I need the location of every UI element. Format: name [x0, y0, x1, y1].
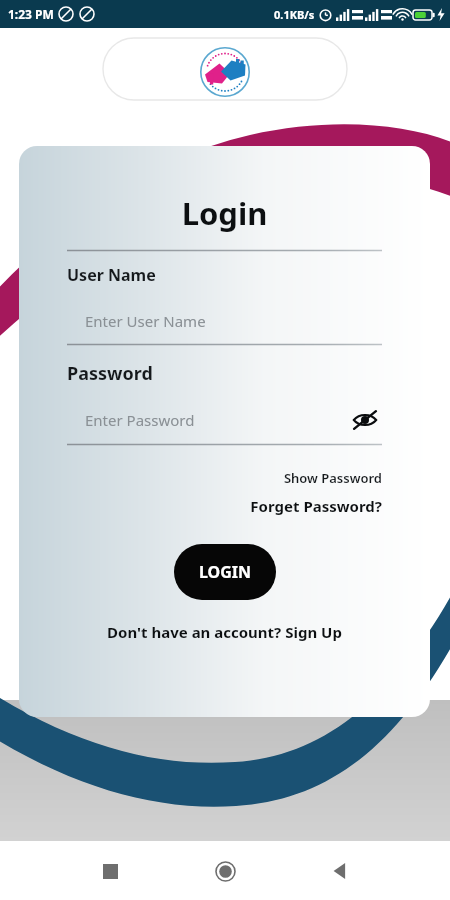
staticText: Show Password — [67, 469, 382, 487]
staticText: Enter User Name — [85, 311, 206, 331]
button[interactable]: Enter User Name — [67, 306, 382, 336]
button[interactable]: Recents — [87, 848, 133, 894]
button[interactable]: Forget Password? — [67, 496, 382, 516]
button[interactable]: Back — [317, 848, 363, 894]
staticText: Login — [67, 192, 382, 234]
button[interactable]: Home — [202, 848, 248, 894]
staticText: User Name — [67, 264, 156, 286]
staticText: 0.1KB/s — [274, 7, 315, 22]
button[interactable]: LOGIN — [174, 544, 276, 600]
button[interactable]: Don't have an account? Sign Up — [67, 622, 382, 642]
staticText: Enter Password — [85, 410, 195, 430]
button[interactable]: Enter Password — [67, 403, 348, 437]
staticText: Forget Password? — [67, 496, 382, 516]
staticText: Password — [67, 361, 153, 386]
staticText: LOGIN — [199, 561, 252, 583]
staticText: 1:23 PM — [8, 6, 54, 22]
staticText: Don't have an account? Sign Up — [67, 622, 382, 642]
button[interactable]: Show password — [348, 403, 382, 437]
button[interactable]: Show Password — [67, 469, 382, 487]
